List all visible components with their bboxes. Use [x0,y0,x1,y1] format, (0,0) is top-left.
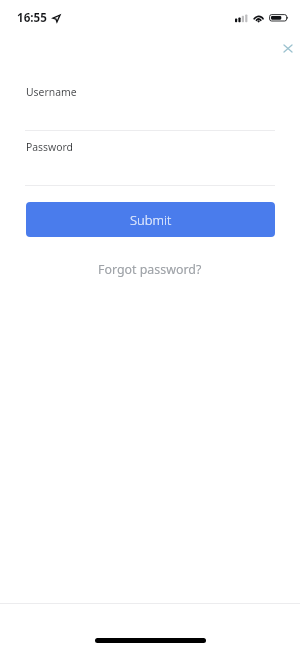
staticText: Submit [130,211,172,229]
button[interactable]: Username [25,84,275,131]
button[interactable]: Forgot password? [98,258,202,280]
staticText: Password [26,140,73,154]
staticText: Username [26,85,77,99]
button[interactable]: Close [277,37,299,59]
button[interactable]: Submit [26,202,275,237]
staticText: Forgot password? [98,261,202,278]
staticText: 16:55 [17,10,47,26]
button[interactable]: Password [25,139,275,186]
